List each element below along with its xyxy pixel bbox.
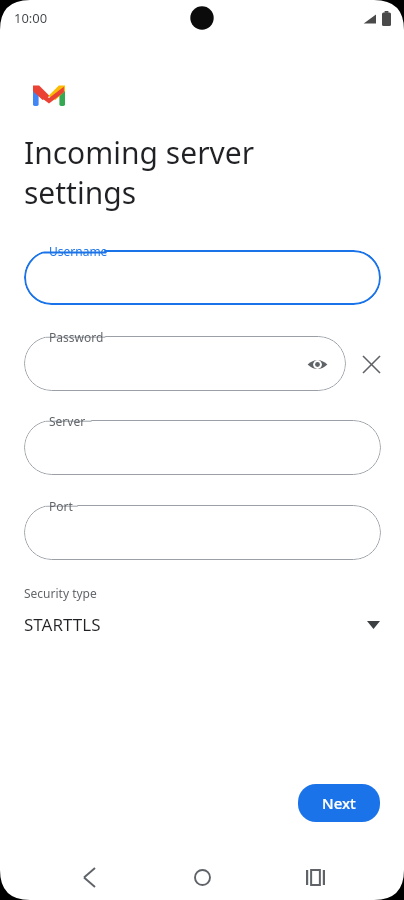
staticText: Password [49,329,104,345]
button[interactable] [24,250,381,305]
button[interactable]: Home [178,854,226,900]
button[interactable] [24,505,381,560]
staticText: Server [49,413,86,429]
button[interactable]: Security type [0,585,404,636]
staticText: 10:00 [14,9,48,27]
button[interactable]: Next [298,784,380,822]
button[interactable]: Show password [302,349,332,379]
button[interactable]: Clear password [354,347,388,381]
button[interactable]: Show password [24,336,346,391]
button[interactable]: Recent apps [291,854,339,900]
other: Open security type menu [367,621,380,629]
staticText: Username [49,243,108,259]
staticText: STARTTLS [24,613,367,636]
staticText: Incoming server settings [24,132,255,213]
staticText: Next [322,793,356,813]
button[interactable] [24,420,381,475]
other: Gmail [33,85,65,106]
staticText: Security type [24,585,97,601]
staticText: Port [49,498,73,514]
button[interactable]: Back [65,854,113,900]
